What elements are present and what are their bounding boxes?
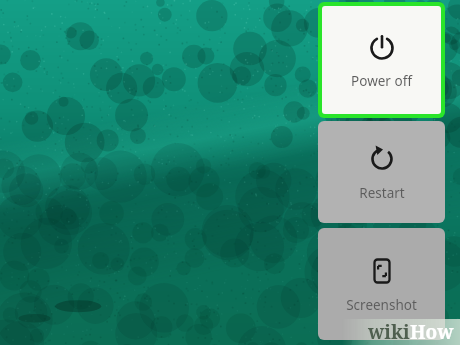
staticText: Restart [359, 184, 405, 202]
staticText: Power off [351, 72, 412, 90]
button[interactable]: Restart [318, 121, 445, 223]
staticText: Screenshot [346, 296, 417, 314]
button[interactable]: Screenshot [318, 228, 445, 340]
staticText: wiki [368, 319, 410, 345]
button[interactable]: Power off [322, 6, 441, 114]
staticText: How [410, 319, 454, 345]
